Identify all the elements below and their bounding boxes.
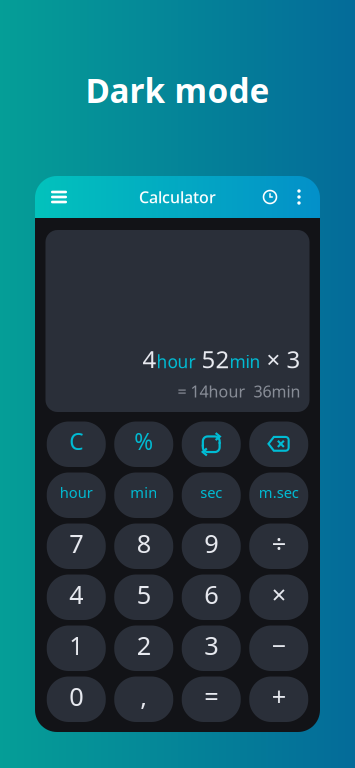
button[interactable]: C	[47, 421, 106, 467]
staticText: −	[272, 628, 286, 662]
button[interactable]: More options	[285, 176, 313, 218]
staticText: m.sec	[259, 482, 299, 502]
button[interactable]: min	[114, 472, 173, 518]
staticText: ,	[140, 679, 147, 713]
staticText: × 3	[260, 343, 300, 375]
button[interactable]: 9	[182, 523, 241, 569]
staticText: ×	[272, 577, 286, 611]
staticText: =	[204, 679, 218, 713]
staticText: Calculator	[139, 186, 216, 208]
button[interactable]: =	[182, 676, 241, 722]
staticText: 3	[204, 628, 218, 662]
staticText: 4	[142, 343, 156, 375]
button[interactable]: 8	[114, 523, 173, 569]
button[interactable]: m.sec	[249, 472, 308, 518]
button[interactable]: 6	[182, 574, 241, 620]
button[interactable]: 1	[47, 625, 106, 671]
button[interactable]: 0	[47, 676, 106, 722]
button[interactable]: Menu	[43, 176, 75, 218]
staticText: sec	[200, 482, 222, 502]
button[interactable]: 3	[182, 625, 241, 671]
staticText: +	[272, 679, 286, 713]
staticText: 1	[69, 628, 83, 662]
staticText: 6	[204, 577, 218, 611]
staticText: min	[229, 350, 260, 373]
button[interactable]: sec	[182, 472, 241, 518]
staticText: 0	[69, 679, 83, 713]
button[interactable]: 7	[47, 523, 106, 569]
staticText: hour	[60, 482, 93, 502]
staticText: hour	[156, 350, 195, 373]
staticText: ÷	[272, 526, 286, 560]
button[interactable]: 4	[47, 574, 106, 620]
button[interactable]: +	[249, 676, 308, 722]
staticText: Dark mode	[85, 68, 269, 112]
staticText: 2	[137, 628, 151, 662]
button[interactable]: 5	[114, 574, 173, 620]
button[interactable]: Swap units	[182, 421, 241, 467]
staticText: 8	[137, 526, 151, 560]
button[interactable]: ÷	[249, 523, 308, 569]
staticText: C	[69, 426, 83, 456]
staticText: 52	[201, 343, 229, 375]
button[interactable]: −	[249, 625, 308, 671]
staticText: min	[130, 482, 157, 502]
staticText: %	[134, 426, 153, 456]
button[interactable]: 2	[114, 625, 173, 671]
staticText: 9	[204, 526, 218, 560]
button[interactable]: ×	[249, 574, 308, 620]
button[interactable]: hour	[47, 472, 106, 518]
button[interactable]: Delete	[249, 421, 308, 467]
staticText: 7	[69, 526, 83, 560]
button[interactable]: %	[114, 421, 173, 467]
button[interactable]: ,	[114, 676, 173, 722]
staticText: 4	[69, 577, 83, 611]
staticText: 5	[137, 577, 151, 611]
staticText: = 14hour 36min	[177, 381, 300, 402]
button[interactable]: History	[255, 176, 285, 218]
